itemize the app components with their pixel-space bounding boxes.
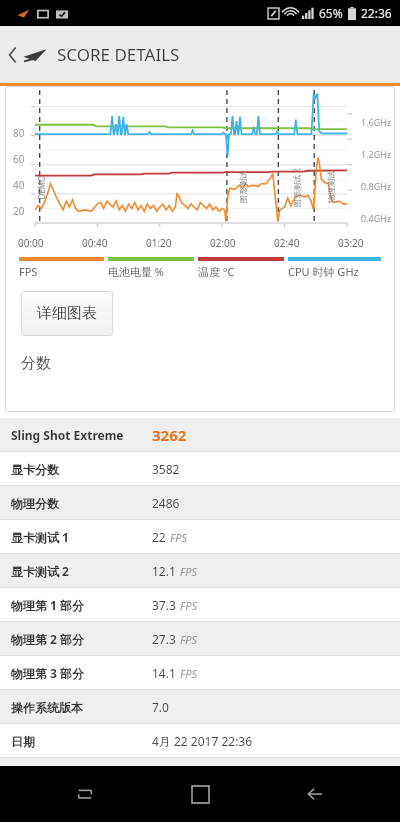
other: Back (8, 46, 17, 64)
staticText: SCORE DETAILS (57, 43, 180, 66)
button[interactable]: Back (0, 26, 400, 83)
staticText: 1.2GHz (361, 148, 392, 160)
staticText: 12.1 (152, 563, 176, 579)
button[interactable]: 物理第 3 部分 (0, 656, 400, 690)
staticText: 40 (13, 178, 25, 192)
staticText: FPS (170, 530, 188, 545)
staticText: 0.4GHz (361, 212, 392, 224)
staticText: 14.1 (152, 665, 176, 681)
staticText: 物理分数 (11, 496, 59, 511)
button[interactable]: 物理第 2 部分 (0, 622, 400, 656)
button[interactable]: Back (285, 766, 345, 822)
staticText: FPS (180, 666, 198, 681)
staticText: 00:00 (18, 236, 44, 250)
staticText: 详细图表 (37, 304, 97, 323)
button[interactable]: 显卡测试 1 (0, 520, 400, 554)
staticText: 1.6GHz (361, 116, 392, 128)
staticText: 温度 °C (198, 264, 235, 279)
staticText: 图形测试 (238, 171, 248, 203)
button[interactable]: Sling Shot Extreme (0, 418, 400, 452)
button[interactable]: 物理分数 (0, 486, 400, 520)
staticText: 3262 (152, 425, 187, 445)
staticText: 3582 (152, 461, 180, 477)
staticText: 日期 (11, 734, 35, 749)
button[interactable]: 显卡分数 (0, 452, 400, 486)
staticText: 显卡测试 2 (11, 563, 69, 579)
staticText: 20 (13, 204, 25, 218)
staticText: 图形测试 2 (291, 168, 302, 207)
staticText: 电池电量 % (108, 264, 165, 279)
staticText: FPS (19, 264, 38, 279)
staticText: 分数 (21, 354, 51, 373)
button[interactable]: 日期 (0, 724, 400, 758)
staticText: 27.3 (152, 631, 176, 647)
staticText: 02:40 (274, 236, 300, 250)
staticText: 物理第 3 部分 (11, 665, 85, 681)
staticText: 0.8GHz (361, 180, 392, 192)
staticText: 22:36 (361, 5, 392, 21)
staticText: 操作系统版本 (11, 700, 83, 715)
button[interactable]: 显卡测试 2 (0, 554, 400, 588)
staticText: CPU 时钟 GHz (288, 264, 359, 279)
staticText: 显卡测试 1 (11, 529, 69, 545)
staticText: 80 (13, 126, 25, 140)
staticText: 22 (152, 529, 166, 545)
staticText: Sling Shot Extreme (11, 427, 124, 443)
staticText: 65% (319, 5, 343, 21)
staticText: 物理第 2 部分 (11, 631, 85, 647)
staticText: DEMO (35, 175, 46, 199)
staticText: 03:20 (338, 236, 364, 250)
staticText: FPS (180, 632, 198, 647)
staticText: 60 (13, 152, 25, 166)
staticText: 显卡分数 (11, 462, 59, 477)
staticText: 2486 (152, 495, 180, 511)
button[interactable]: 操作系统版本 (0, 690, 400, 724)
staticText: 02:00 (210, 236, 236, 250)
staticText: FPS (180, 564, 198, 579)
button[interactable]: Recents (55, 766, 115, 822)
staticText: 37.3 (152, 597, 176, 613)
staticText: 4月 22 2017 22:36 (152, 733, 253, 749)
staticText: 7.0 (152, 699, 169, 715)
staticText: 00:40 (82, 236, 108, 250)
button[interactable]: 详细图表 (21, 291, 113, 336)
staticText: 物理测试 (326, 171, 336, 203)
staticText: FPS (180, 598, 198, 613)
button[interactable]: 物理第 1 部分 (0, 588, 400, 622)
button[interactable]: Home (170, 766, 230, 822)
staticText: 01:20 (146, 236, 172, 250)
staticText: 物理第 1 部分 (11, 597, 85, 613)
